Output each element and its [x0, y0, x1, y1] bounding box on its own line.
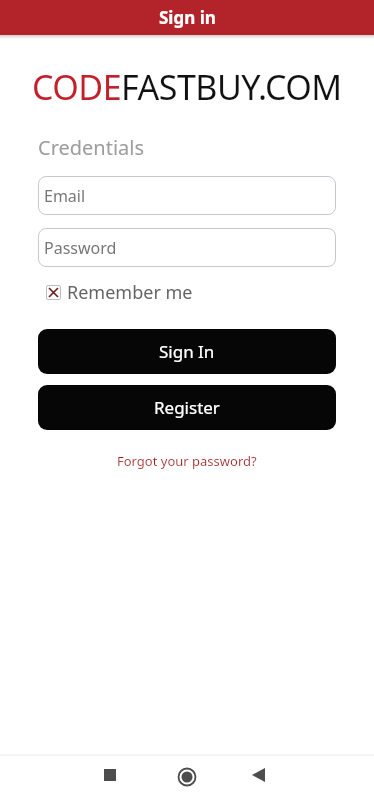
staticText: Credentials	[38, 134, 145, 161]
staticText: Register	[154, 396, 220, 419]
button[interactable]: Password	[38, 228, 336, 267]
button[interactable]: Register	[38, 385, 336, 430]
staticText: Password	[44, 237, 117, 259]
button[interactable]: Forgot your password?	[117, 452, 257, 470]
staticText: Remember me	[67, 280, 193, 305]
staticText: CODEFASTBUY.COM	[32, 64, 342, 110]
staticText: Sign in	[159, 6, 216, 29]
button[interactable]: Email	[38, 176, 336, 215]
staticText: Sign In	[159, 340, 215, 363]
staticText: Email	[44, 185, 86, 207]
button[interactable]: Sign In	[38, 329, 336, 374]
button[interactable]: Remember me	[38, 280, 193, 305]
